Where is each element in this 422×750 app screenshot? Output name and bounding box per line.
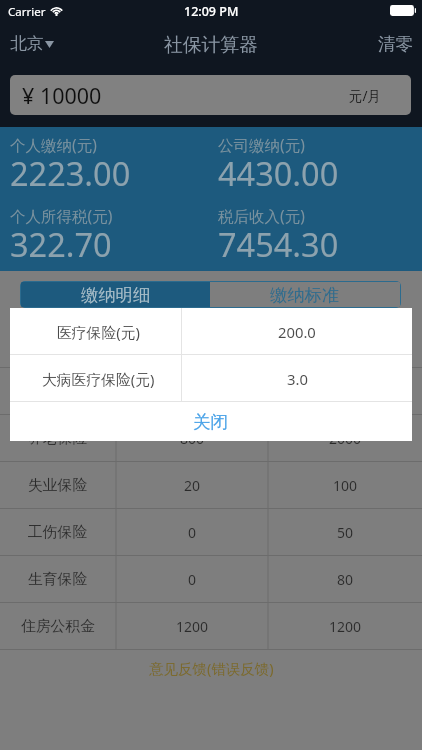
staticText: 失业保险 [28, 476, 88, 495]
staticText: 住房公积金 [21, 617, 95, 636]
staticText: 20 [184, 476, 201, 495]
staticText: 生育保险 [28, 570, 88, 589]
staticText: 7454.30 [218, 222, 339, 266]
button[interactable]: 失业保险 [0, 462, 422, 509]
staticText: 公司缴纳(元) [218, 134, 305, 155]
staticText: 意见反馈(错误反馈) [149, 658, 274, 678]
staticText: 险种 [43, 335, 73, 354]
staticText: 个人缴纳(元) [10, 134, 97, 155]
staticText: 0 [188, 570, 197, 589]
staticText: 缴纳明细 [81, 284, 151, 306]
button[interactable]: 意见反馈(错误反馈) [143, 656, 280, 680]
staticText: 北京 [10, 33, 44, 54]
staticText: 大病医疗保险(元) [42, 369, 155, 389]
staticText: 医疗保险(元) [57, 322, 140, 342]
staticText: 100 [333, 476, 358, 495]
staticText: 2223.00 [10, 151, 131, 195]
staticText: 1200 [176, 617, 209, 636]
staticText: 12:09 PM [184, 3, 239, 20]
staticText: 元/月 [349, 87, 382, 105]
button[interactable]: 缴纳明细 [21, 282, 210, 307]
button[interactable]: ¥ 10000 [10, 75, 411, 115]
staticText: 800 [180, 429, 205, 448]
staticText: 3.0 [287, 369, 308, 389]
staticText: ¥ 10000 [22, 81, 102, 110]
staticText: 工伤保险 [28, 523, 88, 542]
staticText: 4430.00 [218, 151, 339, 195]
button[interactable]: 住房公积金 [0, 603, 422, 650]
staticText: 1200 [329, 617, 362, 636]
staticText: 80 [337, 570, 354, 589]
staticText: 200.0 [278, 322, 316, 342]
button[interactable]: 生育保险 [0, 556, 422, 603]
button[interactable]: 北京 [6, 30, 58, 57]
staticText: 养老保险 [28, 429, 88, 448]
staticText: 50 [337, 523, 354, 542]
staticText: Carrier [8, 4, 46, 20]
staticText: 医疗保险 [28, 382, 88, 401]
staticText: 个人所得税(元) [10, 205, 113, 226]
staticText: 2000 [329, 429, 362, 448]
button[interactable]: 医疗保险 [0, 368, 422, 415]
button[interactable]: 关闭 [10, 402, 412, 441]
button[interactable]: 工伤保险 [0, 509, 422, 556]
staticText: 税后收入(元) [218, 205, 305, 226]
staticText: 社保计算器 [164, 33, 258, 57]
staticText: 322.70 [10, 222, 112, 266]
staticText: 缴纳标准 [270, 284, 340, 306]
button[interactable]: 养老保险 [0, 415, 422, 462]
button[interactable]: 险种 [0, 321, 422, 368]
staticText: 个人(元) [167, 335, 218, 354]
button[interactable]: 清零 [374, 30, 417, 58]
staticText: 0 [188, 523, 197, 542]
staticText: 关闭 [193, 411, 229, 433]
button[interactable]: 缴纳标准 [210, 282, 400, 307]
staticText: 203 [180, 382, 205, 401]
staticText: 清零 [378, 33, 413, 55]
